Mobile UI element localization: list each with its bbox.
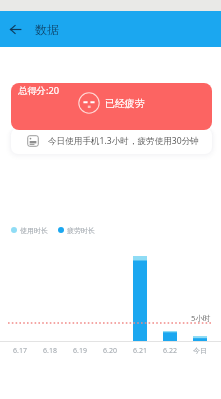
staticText: 6.21 [133,346,147,356]
staticText: 6.22 [163,346,177,356]
staticText: 数据 [35,22,59,37]
staticText: 今日使用手机1.3小时，疲劳使用30分钟 [48,135,199,147]
button[interactable]: Back [0,12,30,47]
staticText: 今日 [193,346,207,355]
button[interactable]: 总得分:20 [11,83,212,130]
staticText: 6.18 [43,346,57,356]
staticText: 6.19 [73,346,87,356]
staticText: 总得分:20 [18,84,60,97]
staticText: 使用时长 [20,226,48,235]
staticText: 疲劳时长 [67,226,95,235]
staticText: 6.17 [13,346,27,356]
button[interactable]: 今日使用手机1.3小时，疲劳使用30分钟 [11,128,212,154]
staticText: 已经疲劳 [105,97,145,110]
staticText: 6.20 [103,346,117,356]
staticText: 5小时 [191,313,211,323]
